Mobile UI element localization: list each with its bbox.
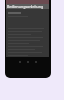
button[interactable]: Bedienungsanleitung [6,4,49,9]
staticText: Bedienungsanleitung [7,4,44,9]
button[interactable] [8,9,47,57]
